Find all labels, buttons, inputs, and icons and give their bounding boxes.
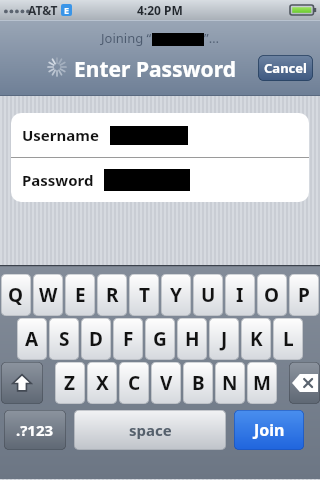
- button[interactable]: P: [289, 274, 319, 316]
- staticText: G: [153, 326, 167, 352]
- staticText: F: [123, 326, 134, 352]
- staticText: Z: [64, 370, 76, 396]
- staticText: C: [128, 370, 141, 396]
- staticText: ”…: [204, 29, 219, 47]
- button[interactable]: .?123: [4, 410, 66, 450]
- staticText: Cancel: [264, 59, 307, 77]
- staticText: P: [298, 282, 310, 308]
- staticText: X: [96, 370, 109, 396]
- button[interactable]: C: [119, 362, 149, 404]
- button[interactable]: M: [247, 362, 277, 404]
- button[interactable]: N: [215, 362, 245, 404]
- staticText: Y: [170, 282, 182, 308]
- staticText: Join: [254, 419, 285, 441]
- button[interactable]: W: [33, 274, 63, 316]
- button[interactable]: J: [209, 318, 239, 360]
- staticText: B: [192, 370, 205, 396]
- button[interactable]: E: [65, 274, 95, 316]
- button[interactable]: U: [193, 274, 223, 316]
- button[interactable]: L: [273, 318, 303, 360]
- button[interactable]: Join: [234, 410, 304, 450]
- staticText: N: [222, 370, 238, 396]
- staticText: V: [160, 370, 173, 396]
- staticText: R: [106, 282, 119, 308]
- button[interactable]: Q: [1, 274, 31, 316]
- button[interactable]: Z: [55, 362, 85, 404]
- button[interactable]: T: [129, 274, 159, 316]
- staticText: H: [185, 326, 200, 352]
- staticText: W: [39, 282, 58, 308]
- staticText: Joining “: [101, 29, 152, 47]
- button[interactable]: O: [257, 274, 287, 316]
- staticText: .?123: [16, 420, 54, 440]
- button[interactable]: K: [241, 318, 271, 360]
- button[interactable]: I: [225, 274, 255, 316]
- button[interactable]: F: [113, 318, 143, 360]
- button[interactable]: B: [183, 362, 213, 404]
- staticText: M: [253, 370, 271, 396]
- staticText: Password: [22, 170, 94, 190]
- staticText: Username: [22, 125, 99, 145]
- button[interactable]: V: [151, 362, 181, 404]
- staticText: AT&T: [28, 2, 58, 18]
- staticText: U: [201, 282, 216, 308]
- staticText: E: [75, 282, 86, 308]
- button[interactable]: Cancel: [258, 55, 313, 81]
- button[interactable]: space: [74, 410, 226, 450]
- staticText: L: [283, 326, 294, 352]
- button[interactable]: H: [177, 318, 207, 360]
- staticText: space: [129, 420, 172, 440]
- staticText: S: [59, 326, 70, 352]
- staticText: 4:20 PM: [137, 2, 183, 18]
- button[interactable]: Username: [11, 113, 309, 157]
- button[interactable]: S: [49, 318, 79, 360]
- staticText: I: [236, 282, 244, 308]
- staticText: Q: [8, 282, 24, 308]
- button[interactable]: Shift: [1, 362, 43, 404]
- button[interactable]: X: [87, 362, 117, 404]
- button[interactable]: R: [97, 274, 127, 316]
- staticText: K: [250, 326, 263, 352]
- button[interactable]: D: [81, 318, 111, 360]
- staticText: Enter Password: [74, 55, 236, 84]
- button[interactable]: Password: [11, 158, 309, 202]
- button[interactable]: Y: [161, 274, 191, 316]
- button[interactable]: G: [145, 318, 175, 360]
- staticText: J: [221, 326, 228, 352]
- staticText: O: [264, 282, 280, 308]
- button[interactable]: A: [17, 318, 47, 360]
- staticText: E: [64, 4, 70, 16]
- button[interactable]: Backspace: [289, 362, 320, 404]
- staticText: A: [25, 326, 39, 352]
- staticText: T: [139, 282, 150, 308]
- staticText: D: [89, 326, 103, 352]
